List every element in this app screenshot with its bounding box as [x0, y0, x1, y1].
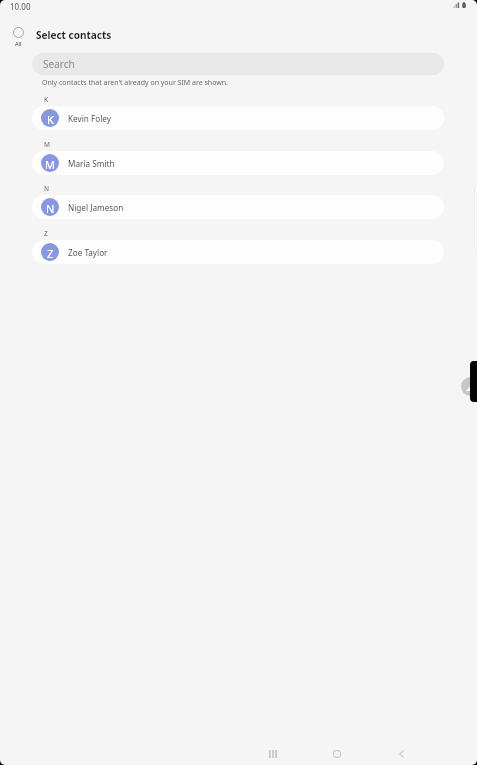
- staticText: Only contacts that aren't already on you…: [42, 78, 228, 88]
- staticText: Z: [44, 229, 48, 238]
- staticText: M: [45, 157, 55, 172]
- staticText: Nigel Jameson: [68, 202, 124, 213]
- button[interactable]: M: [32, 151, 444, 175]
- staticText: Z: [47, 246, 54, 261]
- staticText: N: [46, 201, 55, 216]
- staticText: 10.00: [10, 1, 31, 12]
- staticText: All: [15, 40, 22, 47]
- button[interactable]: K: [32, 106, 444, 130]
- button[interactable]: Back gesture: [461, 377, 477, 396]
- button[interactable]: Search: [32, 53, 444, 75]
- staticText: M: [44, 140, 50, 149]
- staticText: Maria Smith: [68, 158, 115, 169]
- button[interactable]: Z: [32, 240, 444, 264]
- button[interactable]: Recent apps: [241, 741, 305, 765]
- button[interactable]: Home: [305, 741, 369, 765]
- staticText: N: [44, 184, 50, 193]
- staticText: K: [44, 95, 49, 104]
- button[interactable]: N: [32, 195, 444, 219]
- staticText: K: [47, 112, 54, 127]
- button[interactable]: Back: [369, 741, 433, 765]
- staticText: Select contacts: [36, 28, 112, 42]
- staticText: Kevin Foley: [68, 113, 111, 124]
- staticText: Zoe Taylor: [68, 247, 108, 258]
- staticText: Search: [43, 57, 75, 71]
- button[interactable]: Select all: [8, 27, 29, 47]
